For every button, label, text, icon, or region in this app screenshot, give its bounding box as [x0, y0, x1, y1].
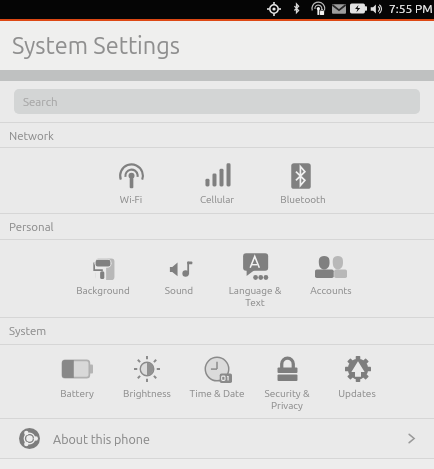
staticText: 7:55 PM: [389, 2, 433, 15]
button[interactable]: Accounts: [293, 240, 369, 296]
staticText: Time & Date: [182, 388, 252, 399]
staticText: System Settings: [12, 32, 180, 58]
button[interactable]: Security & Privacy: [252, 345, 322, 411]
other: Volume: [370, 2, 384, 16]
staticText: About this phone: [53, 432, 150, 446]
staticText: Bluetooth: [260, 194, 346, 205]
staticText: Language & Text: [217, 285, 293, 308]
button[interactable]: About this phone: [0, 419, 434, 458]
staticText: Network: [9, 129, 54, 142]
other: Bluetooth: [290, 2, 303, 15]
other: Wi-Fi: [311, 1, 327, 17]
button[interactable]: Battery: [42, 345, 112, 399]
staticText: Accounts: [293, 285, 369, 296]
button[interactable]: Cellular: [174, 148, 260, 205]
staticText: Background: [65, 285, 141, 296]
button[interactable]: Bluetooth: [260, 148, 346, 205]
staticText: Search: [23, 95, 58, 108]
button[interactable]: Background: [65, 240, 141, 296]
staticText: Updates: [322, 388, 392, 399]
staticText: Sound: [141, 285, 217, 296]
button[interactable]: Sound: [141, 240, 217, 296]
button[interactable]: Search: [14, 89, 420, 114]
other: Location: [267, 2, 281, 16]
other: Messages: [332, 2, 346, 16]
other: Battery: [350, 0, 367, 17]
button[interactable]: Language & Text: [217, 240, 293, 308]
staticText: Personal: [9, 220, 54, 233]
other: Open: [405, 432, 418, 445]
staticText: Battery: [42, 388, 112, 399]
staticText: Wi-Fi: [88, 194, 174, 205]
staticText: Cellular: [174, 194, 260, 205]
button[interactable]: Brightness: [112, 345, 182, 399]
staticText: Security & Privacy: [252, 388, 322, 411]
staticText: Brightness: [112, 388, 182, 399]
button[interactable]: Time & Date: [182, 345, 252, 399]
button[interactable]: Updates: [322, 345, 392, 399]
button[interactable]: Wi-Fi: [88, 148, 174, 205]
staticText: System: [9, 324, 47, 337]
